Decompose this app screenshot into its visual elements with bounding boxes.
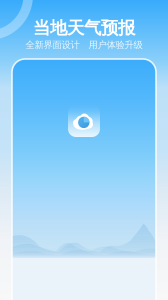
staticText: 全新界面设计 xyxy=(25,39,79,51)
staticText: 用户体验升级 xyxy=(88,39,142,51)
staticText: 当地天气预报 xyxy=(33,17,135,39)
